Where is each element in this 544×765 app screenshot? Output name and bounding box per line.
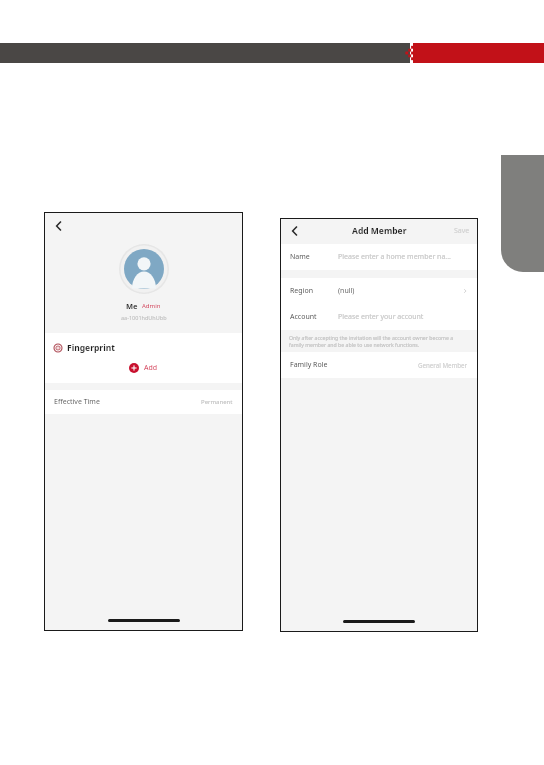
button[interactable]: Add (54, 363, 233, 373)
button[interactable]: Fingerprint (54, 342, 233, 354)
staticText: Add Member (352, 225, 407, 237)
button[interactable]: Effective Time (44, 390, 243, 414)
staticText: Please enter a home member na... (338, 252, 452, 262)
staticText: Effective Time (54, 397, 100, 407)
staticText: Please enter your account (338, 312, 424, 322)
button[interactable]: Account (280, 304, 478, 330)
staticText: Add (144, 363, 158, 373)
staticText: Region (290, 286, 313, 296)
staticText: Family Role (290, 360, 328, 370)
button[interactable]: Back (52, 219, 66, 233)
button[interactable]: Name (280, 244, 478, 270)
staticText: Save (454, 226, 470, 236)
staticText: Admin (142, 302, 161, 310)
staticText: General Member (418, 361, 468, 369)
button[interactable]: Region (280, 278, 478, 304)
staticText: Me (126, 301, 138, 311)
button[interactable]: Family Role (280, 352, 478, 378)
staticText: Permanent (201, 398, 233, 406)
staticText: Fingerprint (67, 342, 115, 354)
staticText: Only after accepting the invitation will… (289, 334, 469, 348)
staticText: Account (290, 312, 317, 322)
staticText: Name (290, 252, 310, 262)
staticText: aa-1001hdUhUbb (121, 314, 167, 321)
button[interactable]: Save (446, 222, 478, 240)
staticText: (null) (338, 286, 355, 296)
button[interactable]: Back (288, 224, 302, 238)
